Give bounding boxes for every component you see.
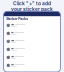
staticText: Click "+" to add — [13, 0, 51, 6]
button[interactable] — [4, 29, 60, 37]
button[interactable] — [4, 37, 60, 45]
button[interactable] — [4, 53, 60, 61]
button[interactable] — [4, 21, 60, 29]
button[interactable] — [4, 45, 60, 53]
button[interactable] — [4, 61, 60, 69]
staticText: Sticker Packs — [6, 17, 28, 21]
staticText: your sticker pack — [11, 6, 53, 12]
